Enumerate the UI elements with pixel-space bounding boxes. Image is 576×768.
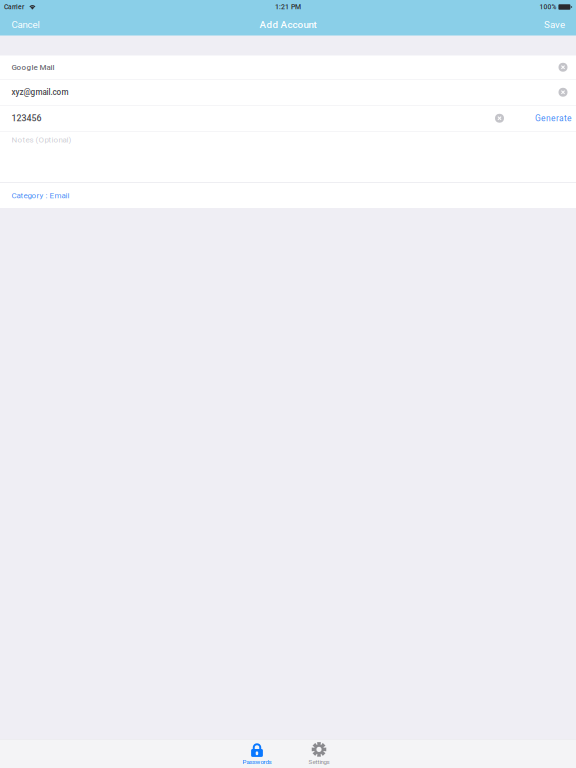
- staticText: Notes (Optional): [11, 135, 71, 144]
- button[interactable]: Settings: [288, 739, 350, 768]
- staticText: Google Mail: [11, 63, 54, 72]
- button[interactable]: Save: [533, 14, 576, 35]
- staticText: Settings: [308, 758, 329, 766]
- button[interactable]: Passwords: [226, 739, 288, 768]
- staticText: 123456: [11, 113, 41, 123]
- staticText: Save: [544, 19, 565, 30]
- staticText: Passwords: [242, 758, 271, 766]
- staticText: xyz@gmail.com: [11, 87, 68, 97]
- button[interactable]: Cancel: [0, 14, 51, 35]
- staticText: 1:21 PM: [275, 3, 301, 11]
- button[interactable]: Category : Email: [0, 183, 576, 208]
- button[interactable]: Google Mail: [0, 55, 576, 79]
- staticText: Cancel: [11, 19, 39, 30]
- staticText: Add Account: [259, 19, 316, 31]
- staticText: Generate: [535, 113, 572, 123]
- staticText: Category : Email: [11, 191, 69, 200]
- button[interactable]: xyz@gmail.com: [0, 79, 576, 105]
- staticText: 100%: [539, 3, 556, 11]
- staticText: Carrier: [4, 3, 24, 11]
- button[interactable]: 123456: [0, 105, 576, 131]
